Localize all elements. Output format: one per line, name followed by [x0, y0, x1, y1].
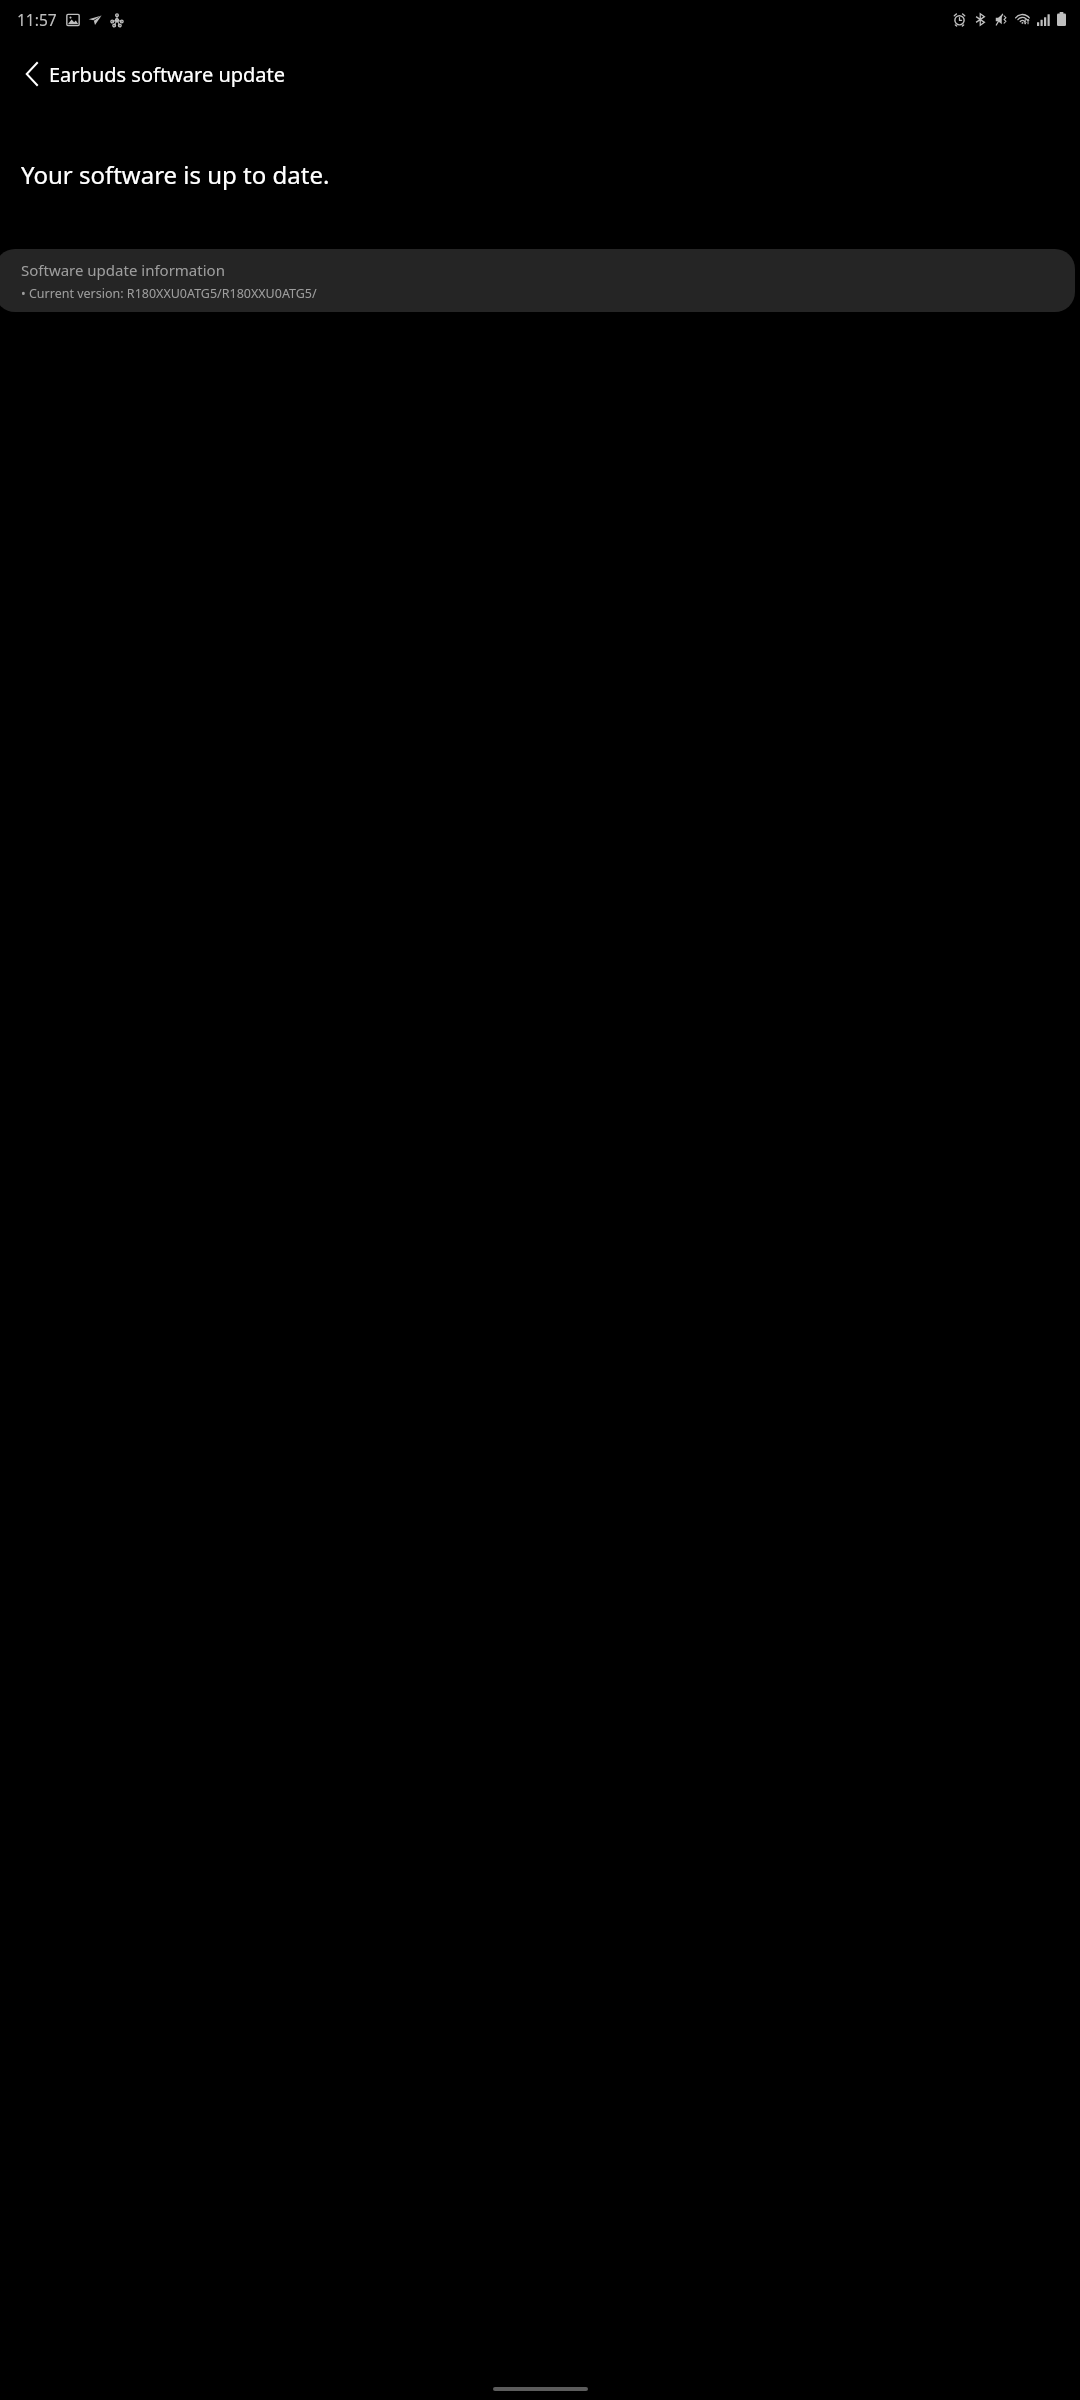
- button[interactable]: Back: [8, 50, 56, 98]
- staticText: Software update information: [21, 260, 225, 280]
- staticText: Earbuds software update: [49, 61, 286, 88]
- staticText: • Current version: R180XXU0ATG5/R180XXU0…: [21, 285, 317, 302]
- button[interactable]: Software update information: [0, 249, 1075, 312]
- staticText: Your software is up to date.: [21, 158, 330, 191]
- staticText: 11:57: [17, 9, 57, 30]
